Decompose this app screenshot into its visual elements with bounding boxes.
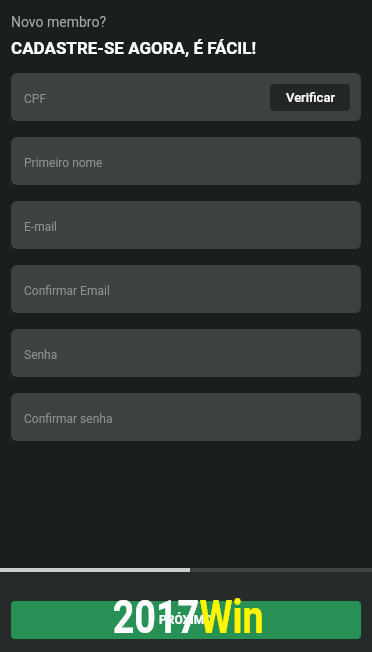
staticText: Verificar [286,90,335,105]
staticText: Primeiro nome [24,156,103,170]
button[interactable]: E-mail [11,201,361,249]
button[interactable]: Senha [11,329,361,377]
staticText: Win [200,590,264,644]
staticText: Confirmar senha [24,412,113,426]
button[interactable]: Confirmar Email [11,265,361,313]
button[interactable]: Verificar [270,84,350,111]
button[interactable]: PRÓXIMO [11,601,361,639]
staticText: E-mail [24,220,58,234]
staticText: Senha [24,348,58,362]
staticText: Confirmar Email [24,284,110,298]
staticText: CPF [24,92,47,106]
button[interactable]: Primeiro nome [11,137,361,185]
button[interactable]: Confirmar senha [11,393,361,441]
staticText: PRÓXIMO [159,613,213,627]
staticText: 2017 [113,590,200,644]
staticText: Novo membro? [11,14,107,30]
staticText: CADASTRE-SE AGORA, É FÁCIL! [11,38,257,58]
button[interactable]: CPF [11,73,361,121]
